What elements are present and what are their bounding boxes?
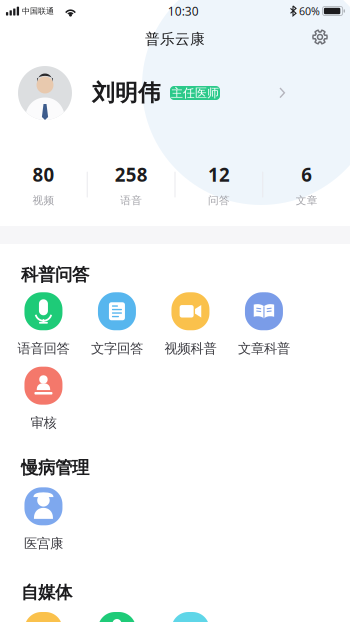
staticText: 语音 (120, 194, 142, 207)
button[interactable]: 视频科普 (154, 292, 227, 357)
staticText: 自媒体 (21, 582, 72, 603)
button[interactable]: 文章科普 (227, 292, 301, 357)
staticText: 文字回答 (91, 340, 143, 357)
staticText: 医宫康 (24, 535, 63, 552)
staticText: 普乐云康 (145, 30, 205, 48)
button[interactable] (154, 612, 227, 622)
staticText: 文章 (296, 194, 318, 207)
button[interactable]: 语音回答 (7, 292, 80, 357)
staticText: 视频 (32, 194, 54, 207)
staticText: 文章科普 (238, 340, 290, 357)
button[interactable] (7, 612, 80, 622)
staticText: 慢病管理 (21, 457, 89, 478)
staticText: 问答 (208, 194, 230, 207)
staticText: 60% (299, 4, 320, 18)
button[interactable]: 医宫康 (7, 487, 80, 552)
staticText: 刘明伟 (92, 79, 161, 107)
button[interactable]: 审核 (7, 367, 80, 431)
button[interactable]: 文字回答 (80, 292, 154, 357)
staticText: 语音回答 (17, 340, 69, 357)
button[interactable]: 6 (263, 162, 350, 207)
button[interactable]: 刘明伟 (0, 60, 350, 126)
staticText: 12 (208, 162, 230, 187)
staticText: 80 (32, 162, 54, 187)
button[interactable]: 12 (175, 162, 262, 207)
staticText: 中国联通 (22, 6, 54, 16)
button[interactable]: 258 (88, 162, 175, 207)
staticText: 审核 (30, 415, 56, 431)
staticText: 视频科普 (164, 340, 216, 357)
staticText: 科普问答 (21, 264, 89, 285)
staticText: 258 (115, 162, 148, 187)
button[interactable]: 设置 (300, 23, 350, 59)
staticText: 6 (301, 162, 312, 187)
button[interactable]: 80 (0, 162, 87, 207)
staticText: 10:30 (168, 3, 199, 19)
staticText: 主任医师 (171, 86, 219, 100)
button[interactable] (80, 612, 154, 622)
